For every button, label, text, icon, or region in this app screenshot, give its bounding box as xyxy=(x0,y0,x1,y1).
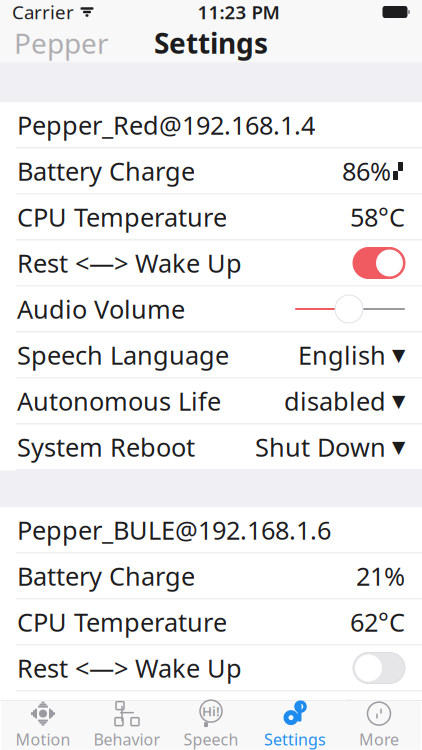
button[interactable]: Autonomous Life xyxy=(0,378,422,423)
staticText: CPU Temperature xyxy=(17,200,227,234)
staticText: 21% xyxy=(356,559,405,593)
staticText: Audio Volume xyxy=(17,292,185,326)
staticText: Shut Down xyxy=(255,430,386,464)
staticText: More xyxy=(359,729,399,750)
button[interactable]: Audio Volume xyxy=(0,286,422,331)
button[interactable]: Settings xyxy=(253,701,337,749)
staticText: Audio Volume xyxy=(17,697,185,731)
staticText: Speech Language xyxy=(17,338,229,372)
staticText: Settings xyxy=(264,729,326,750)
button[interactable]: Hi! xyxy=(169,701,253,749)
staticText: Hi! xyxy=(202,702,220,720)
button[interactable]: CPU Temperature xyxy=(0,194,422,239)
staticText: Speech xyxy=(183,729,238,750)
staticText: Autonomous Life xyxy=(17,384,221,418)
staticText: Pepper xyxy=(14,24,109,62)
staticText: 11:23 PM xyxy=(197,0,279,24)
staticText: Carrier xyxy=(12,0,74,24)
staticText: 62°C xyxy=(350,605,405,639)
staticText: CPU Temperature xyxy=(17,605,227,639)
staticText: Battery Charge xyxy=(17,154,195,188)
button[interactable]: System Reboot xyxy=(0,424,422,469)
staticText: Rest <—> Wake Up xyxy=(17,651,242,685)
staticText: Motion xyxy=(15,729,70,750)
staticText: Behavior xyxy=(93,729,160,750)
staticText: ▼ xyxy=(386,391,405,411)
staticText: 86% xyxy=(342,154,391,188)
button[interactable]: Battery Charge xyxy=(0,553,422,598)
staticText: Settings xyxy=(154,24,268,62)
staticText: Rest <—> Wake Up xyxy=(17,246,242,280)
staticText: ▼ xyxy=(386,437,405,457)
button[interactable]: Motion xyxy=(1,701,85,749)
button[interactable]: Behavior xyxy=(85,701,169,749)
button[interactable]: Rest <—> Wake Up xyxy=(0,645,422,690)
staticText: Battery Charge xyxy=(17,559,195,593)
staticText: Pepper_BULE@192.168.1.6 xyxy=(17,513,331,547)
staticText: English xyxy=(298,338,386,372)
staticText: 58°C xyxy=(350,200,405,234)
button[interactable]: Audio Volume xyxy=(0,691,422,736)
button[interactable]: CPU Temperature xyxy=(0,599,422,644)
staticText: System Reboot xyxy=(17,430,195,464)
button[interactable]: Rest <—> Wake Up xyxy=(0,240,422,285)
staticText: Pepper_Red@192.168.1.4 xyxy=(17,108,315,142)
button[interactable]: Speech Language xyxy=(0,332,422,377)
staticText: ▼ xyxy=(386,345,405,365)
button[interactable]: More xyxy=(337,701,421,749)
button[interactable]: Battery Charge xyxy=(0,148,422,193)
staticText: disabled xyxy=(284,384,386,418)
button[interactable]: Pepper xyxy=(0,24,123,62)
